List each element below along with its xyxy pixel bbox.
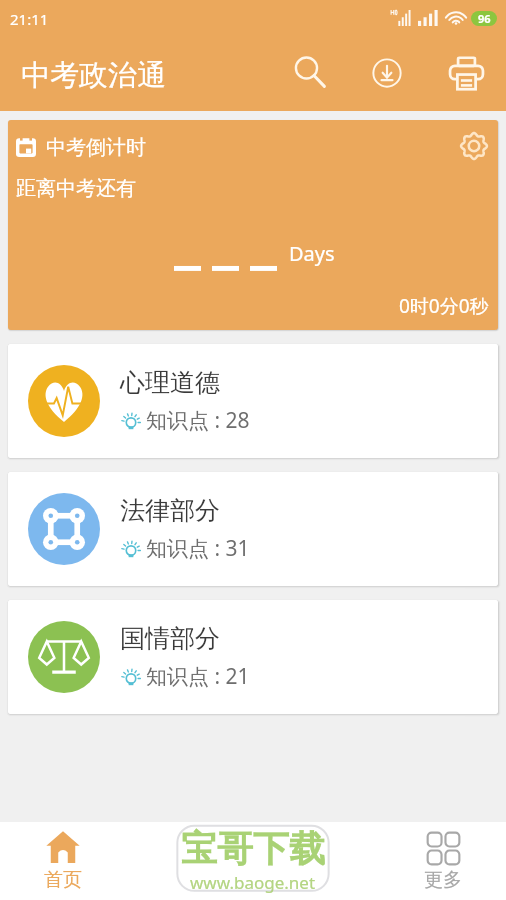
staticText: 0时0分0秒 (399, 293, 489, 319)
staticText: 首页 (44, 868, 82, 892)
staticText: www.baoge.net (190, 871, 316, 894)
button[interactable]: Download (363, 49, 411, 97)
staticText: 法律部分 (120, 495, 220, 526)
button[interactable]: Search (286, 48, 334, 96)
staticText: 知识点 : 31 (146, 534, 250, 563)
staticText: Days (289, 240, 335, 267)
button[interactable]: 首页 (23, 830, 103, 892)
staticText: 96 (478, 11, 491, 26)
staticText: 国情部分 (120, 623, 220, 654)
staticText: 21:11 (10, 9, 49, 29)
staticText: 知识点 : 28 (146, 406, 250, 435)
staticText: 中考倒计时 (46, 135, 146, 160)
button[interactable]: 更多 (403, 832, 483, 892)
button[interactable]: Print (442, 49, 490, 97)
staticText: 宝哥下载 (181, 826, 325, 871)
staticText: 心理道德 (120, 367, 220, 398)
button[interactable]: 国情部分 (8, 600, 498, 714)
staticText: 知识点 : 21 (146, 662, 250, 691)
button[interactable]: 中考倒计时 (8, 120, 498, 330)
button[interactable]: 心理道德 (8, 344, 498, 458)
button[interactable]: Settings (452, 124, 496, 168)
button[interactable]: 法律部分 (8, 472, 498, 586)
staticText: 更多 (424, 868, 462, 892)
staticText: 距离中考还有 (16, 176, 136, 201)
staticText: 中考政治通 (21, 57, 166, 94)
